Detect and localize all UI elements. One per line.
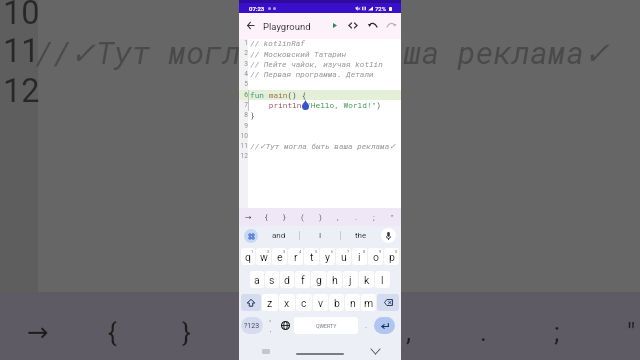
button[interactable]: Change language bbox=[278, 317, 293, 334]
staticText: y bbox=[325, 251, 330, 263]
staticText: 3 bbox=[283, 249, 286, 254]
staticText: } bbox=[283, 213, 286, 222]
button[interactable]: Back bbox=[242, 17, 258, 33]
button[interactable]: Clipboard bbox=[261, 346, 271, 356]
button[interactable]: q bbox=[241, 248, 255, 265]
button[interactable]: r bbox=[288, 248, 303, 265]
staticText: s bbox=[269, 274, 275, 286]
staticText: . bbox=[480, 317, 487, 347]
button[interactable]: y bbox=[320, 248, 335, 265]
staticText: 2 bbox=[239, 49, 248, 57]
staticText: 3 bbox=[239, 60, 248, 68]
button[interactable]: b bbox=[329, 294, 344, 311]
staticText: → bbox=[245, 213, 252, 222]
staticText: and bbox=[272, 231, 286, 240]
staticText: // kotlinRaf bbox=[250, 38, 305, 48]
button[interactable]: z bbox=[262, 294, 278, 311]
button[interactable]: i bbox=[352, 248, 367, 265]
button[interactable]: Keyboard options bbox=[244, 229, 258, 243]
staticText: 7 bbox=[347, 249, 350, 254]
staticText: 4 bbox=[239, 70, 248, 78]
button[interactable]: { bbox=[257, 208, 275, 226]
staticText: l bbox=[381, 274, 384, 286]
button[interactable]: n bbox=[345, 294, 360, 311]
button[interactable]: e bbox=[272, 248, 287, 265]
staticText: → bbox=[27, 317, 49, 347]
staticText: t bbox=[310, 251, 314, 263]
button[interactable]: Backspace bbox=[377, 294, 399, 311]
staticText: // Московский Татарин bbox=[250, 49, 347, 59]
button[interactable]: ) bbox=[311, 208, 329, 226]
button[interactable]: d bbox=[280, 271, 294, 288]
staticText: o bbox=[373, 251, 379, 263]
button[interactable]: j bbox=[343, 271, 358, 288]
button[interactable]: } bbox=[275, 208, 293, 226]
staticText: 11 bbox=[3, 32, 40, 70]
staticText: the bbox=[355, 231, 367, 240]
staticText: b bbox=[334, 297, 340, 309]
button[interactable]: o bbox=[368, 248, 383, 265]
staticText: e bbox=[277, 251, 283, 263]
staticText: ; bbox=[554, 317, 560, 347]
button[interactable]: and bbox=[258, 226, 299, 245]
staticText: i bbox=[358, 251, 361, 263]
button[interactable]: a bbox=[250, 271, 264, 288]
button[interactable]: p bbox=[384, 248, 399, 265]
staticText: , bbox=[270, 326, 272, 333]
staticText: k bbox=[364, 274, 370, 286]
button[interactable]: Undo bbox=[364, 17, 380, 33]
staticText: 12 bbox=[239, 152, 248, 160]
button[interactable]: g bbox=[311, 271, 326, 288]
staticText: 6 bbox=[331, 249, 334, 254]
button[interactable]: t bbox=[304, 248, 319, 265]
staticText: c bbox=[301, 297, 307, 309]
button[interactable]: ° bbox=[264, 317, 277, 334]
button[interactable]: u bbox=[336, 248, 351, 265]
button[interactable]: h bbox=[327, 271, 342, 288]
staticText: // Первая программа. Детали bbox=[250, 69, 374, 79]
button[interactable]: l bbox=[375, 271, 390, 288]
button[interactable]: Redo bbox=[383, 17, 399, 33]
button[interactable]: Insert code bbox=[345, 17, 361, 33]
staticText: 1 bbox=[239, 39, 248, 47]
staticText: g bbox=[316, 274, 322, 286]
button[interactable]: m bbox=[361, 294, 376, 311]
button[interactable]: , bbox=[329, 208, 347, 226]
button[interactable]: Hide keyboard bbox=[369, 345, 381, 357]
button[interactable]: I bbox=[300, 226, 340, 245]
button[interactable]: k bbox=[359, 271, 374, 288]
button[interactable]: w bbox=[256, 248, 271, 265]
staticText: n bbox=[350, 297, 356, 309]
button[interactable]: the bbox=[341, 226, 381, 245]
button[interactable]: Voice input bbox=[381, 228, 396, 243]
staticText: ( bbox=[256, 317, 265, 347]
staticText: 5 bbox=[239, 80, 248, 88]
staticText: ) bbox=[319, 213, 322, 222]
button[interactable]: Run bbox=[327, 17, 343, 33]
button[interactable]: ; bbox=[365, 208, 383, 226]
button[interactable]: → bbox=[239, 208, 257, 226]
staticText: 12 bbox=[3, 72, 40, 110]
button[interactable]: ?123 bbox=[241, 317, 263, 334]
button[interactable]: c bbox=[296, 294, 312, 311]
button[interactable]: Space bbox=[294, 317, 358, 334]
staticText: ) bbox=[329, 317, 339, 347]
staticText: x bbox=[284, 297, 290, 309]
staticText: println("Hello, World!") bbox=[250, 100, 382, 110]
staticText: 07:23 bbox=[249, 5, 265, 12]
button[interactable]: . bbox=[359, 317, 373, 334]
button[interactable]: Shift bbox=[241, 294, 261, 311]
staticText: p bbox=[389, 251, 395, 263]
button[interactable]: ( bbox=[293, 208, 311, 226]
button[interactable]: f bbox=[295, 271, 310, 288]
button[interactable]: s bbox=[265, 271, 279, 288]
button[interactable]: " bbox=[383, 208, 401, 226]
button[interactable]: Enter bbox=[374, 317, 395, 334]
staticText: 11 bbox=[239, 142, 248, 150]
staticText: " bbox=[391, 213, 394, 222]
staticText: d bbox=[284, 274, 290, 286]
button[interactable]: v bbox=[313, 294, 328, 311]
button[interactable]: x bbox=[279, 294, 295, 311]
staticText: f bbox=[301, 274, 305, 286]
